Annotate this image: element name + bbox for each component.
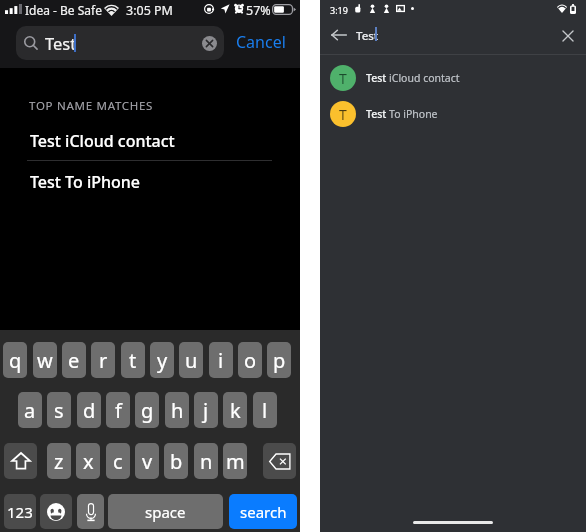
button[interactable]: 123 [4, 494, 36, 529]
staticText: l [262, 397, 268, 424]
staticText: Test iCloud contact [30, 130, 175, 152]
button[interactable]: Shift [4, 443, 37, 479]
button[interactable]: k [223, 392, 247, 428]
button[interactable]: e [62, 342, 86, 378]
button[interactable]: T [320, 60, 586, 96]
staticText: Cancel [236, 31, 286, 53]
button[interactable]: g [135, 392, 159, 428]
staticText: p [273, 347, 286, 374]
button[interactable]: x [76, 443, 100, 479]
button[interactable]: w [33, 342, 57, 378]
staticText: k [230, 397, 241, 424]
button[interactable]: T [320, 96, 586, 132]
staticText: g [141, 397, 154, 424]
staticText: 3:05 PM [126, 2, 173, 19]
button[interactable]: r [91, 342, 115, 378]
staticText: 123 [7, 502, 33, 522]
button[interactable]: s [47, 392, 71, 428]
button[interactable]: Test To iPhone [0, 165, 300, 198]
button[interactable]: n [194, 443, 218, 479]
button[interactable]: Cancel [236, 26, 288, 58]
staticText: u [185, 347, 198, 374]
button[interactable]: t [121, 342, 145, 378]
button[interactable]: c [106, 443, 130, 479]
staticText: 57% [246, 2, 271, 19]
staticText: z [54, 448, 64, 475]
button[interactable]: Test [16, 26, 224, 60]
button[interactable]: Dictation [77, 494, 104, 529]
button[interactable]: v [135, 443, 159, 479]
button[interactable]: search [229, 494, 297, 529]
staticText: search [240, 502, 287, 522]
button[interactable]: y [150, 342, 174, 378]
button[interactable]: q [3, 342, 27, 378]
staticText: v [142, 448, 153, 475]
button[interactable]: l [253, 392, 277, 428]
button[interactable]: b [164, 443, 188, 479]
staticText: m [226, 448, 245, 475]
staticText: Test [45, 32, 77, 54]
staticText: y [157, 347, 168, 374]
staticText: Test [356, 28, 379, 44]
button[interactable]: m [223, 443, 247, 479]
staticText: h [171, 397, 184, 424]
button[interactable]: Backspace [263, 443, 296, 479]
staticText: r [99, 347, 108, 374]
button[interactable]: z [47, 443, 71, 479]
button[interactable]: j [194, 392, 218, 428]
staticText: Test To iPhone [30, 171, 141, 193]
staticText: T [339, 105, 347, 124]
staticText: t [129, 347, 137, 374]
staticText: i [218, 347, 224, 374]
button[interactable]: space [108, 494, 223, 529]
button[interactable]: a [18, 392, 42, 428]
staticText: w [37, 347, 53, 374]
staticText: s [54, 397, 64, 424]
staticText: x [83, 448, 94, 475]
button[interactable]: i [209, 342, 233, 378]
button[interactable]: Test iCloud contact [0, 124, 300, 157]
staticText: a [24, 397, 36, 424]
button[interactable]: f [106, 392, 130, 428]
staticText: Test To iPhone [366, 107, 438, 121]
button[interactable]: h [165, 392, 189, 428]
button[interactable]: Emoji [40, 494, 72, 529]
staticText: 3:19 [330, 4, 348, 16]
staticText: f [115, 397, 122, 424]
staticText: e [68, 347, 80, 374]
staticText: n [200, 448, 213, 475]
staticText: Test iCloud contact [366, 71, 460, 85]
staticText: b [170, 448, 183, 475]
button[interactable]: Back [325, 21, 353, 49]
staticText: o [244, 347, 257, 374]
staticText: c [113, 448, 123, 475]
button[interactable]: u [179, 342, 203, 378]
staticText: T [339, 69, 347, 88]
staticText: Idea - Be Safe [25, 2, 102, 18]
button[interactable]: p [267, 342, 291, 378]
staticText: j [203, 397, 209, 424]
button[interactable]: o [238, 342, 262, 378]
button[interactable]: Clear search [554, 22, 582, 50]
staticText: d [83, 397, 96, 424]
staticText: space [145, 502, 186, 522]
staticText: q [9, 347, 22, 374]
staticText: TOP NAME MATCHES [29, 98, 154, 114]
button[interactable]: d [77, 392, 101, 428]
